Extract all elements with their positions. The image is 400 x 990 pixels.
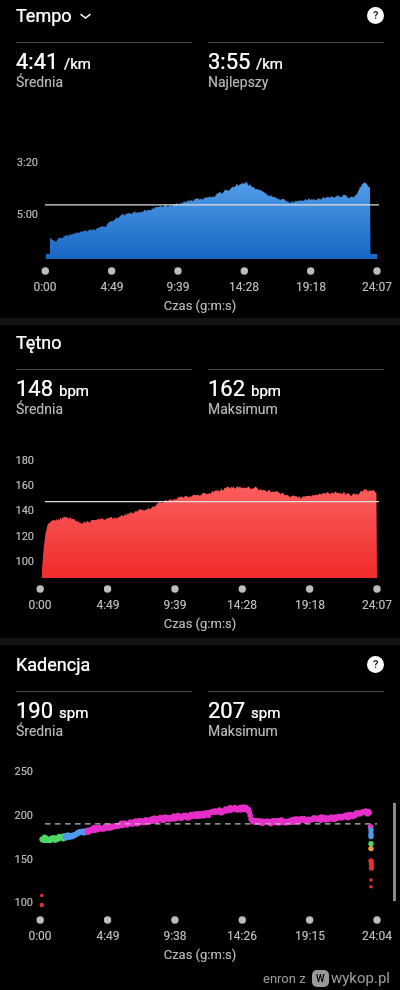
button[interactable]: Tempo — [16, 5, 92, 26]
staticText: 24:04 — [347, 929, 400, 943]
staticText: Maksimum — [208, 723, 278, 739]
staticText: 14:28 — [214, 280, 274, 294]
button[interactable]: Tętno — [16, 332, 62, 353]
staticText: 4:41 — [16, 49, 59, 75]
staticText: 0:00 — [10, 598, 70, 612]
staticText: 150 — [0, 853, 33, 866]
staticText: bpm — [59, 382, 89, 400]
staticText: 19:18 — [281, 280, 341, 294]
staticText: 250 — [0, 765, 33, 778]
staticText: spm — [59, 704, 89, 722]
staticText: /km — [256, 55, 283, 73]
button[interactable]: 4:41 — [16, 42, 192, 91]
staticText: 0:00 — [15, 280, 75, 294]
staticText: 4:49 — [82, 280, 142, 294]
staticText: 24:07 — [347, 280, 400, 294]
staticText: 100 — [0, 555, 34, 568]
button[interactable]: 190 — [16, 691, 192, 740]
staticText: 19:15 — [280, 929, 340, 943]
button[interactable]: 162 — [208, 369, 384, 418]
staticText: 140 — [0, 504, 34, 517]
staticText: enron z — [263, 971, 306, 986]
staticText: 14:26 — [212, 929, 272, 943]
staticText: Tętno — [16, 332, 62, 353]
staticText: 19:18 — [280, 598, 340, 612]
staticText: ? — [373, 658, 379, 671]
button[interactable]: 3:55 — [208, 42, 384, 91]
staticText: bpm — [251, 382, 281, 400]
staticText: 14:28 — [212, 598, 272, 612]
staticText: spm — [251, 704, 281, 722]
button[interactable]: 207 — [208, 691, 384, 740]
staticText: Czas (g:m:s) — [0, 298, 400, 313]
staticText: Średnia — [16, 723, 63, 739]
staticText: 4:49 — [78, 598, 138, 612]
staticText: /km — [64, 55, 91, 73]
staticText: Czas (g:m:s) — [0, 616, 400, 631]
staticText: 148 — [16, 376, 54, 402]
staticText: Średnia — [16, 74, 63, 90]
staticText: 5:00 — [0, 208, 38, 221]
staticText: 9:39 — [145, 598, 205, 612]
staticText: 200 — [0, 809, 33, 822]
staticText: ? — [373, 9, 379, 22]
staticText: 3:55 — [208, 49, 251, 75]
staticText: Najlepszy — [208, 74, 269, 90]
staticText: Maksimum — [208, 401, 278, 417]
staticText: 180 — [0, 454, 34, 467]
staticText: Kadencja — [16, 654, 91, 675]
staticText: 160 — [0, 479, 34, 492]
button[interactable]: 148 — [16, 369, 192, 418]
button[interactable]: Help — [367, 7, 384, 24]
staticText: 0:00 — [10, 929, 70, 943]
staticText: wykop.pl — [331, 969, 390, 987]
staticText: 162 — [208, 376, 246, 402]
staticText: Średnia — [16, 401, 63, 417]
staticText: 9:38 — [145, 929, 205, 943]
button[interactable]: Help — [367, 656, 384, 673]
staticText: 9:39 — [148, 280, 208, 294]
staticText: 100 — [0, 896, 33, 909]
staticText: 120 — [0, 530, 34, 543]
staticText: Czas (g:m:s) — [0, 947, 400, 962]
staticText: 3:20 — [0, 156, 38, 169]
staticText: 190 — [16, 698, 54, 724]
staticText: Tempo — [16, 5, 72, 26]
button[interactable]: Kadencja — [16, 654, 91, 675]
staticText: W — [316, 973, 325, 985]
staticText: 4:49 — [78, 929, 138, 943]
staticText: 24:07 — [347, 598, 400, 612]
staticText: 207 — [208, 698, 246, 724]
